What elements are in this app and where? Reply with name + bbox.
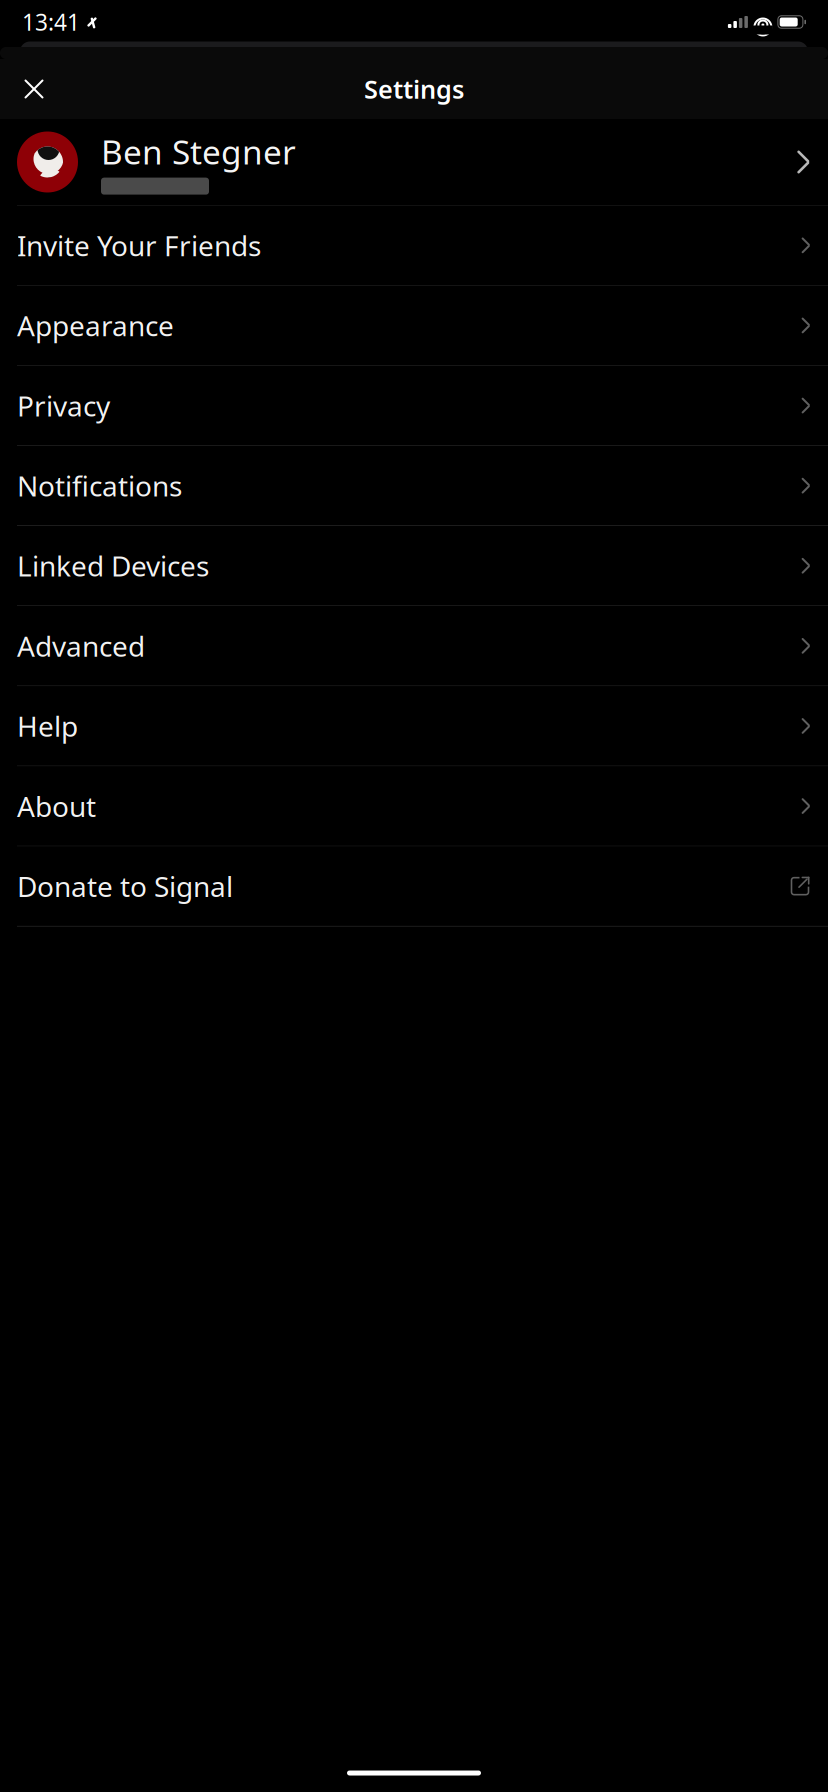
button[interactable]: Notifications [0,446,828,525]
staticText: Help [17,707,78,745]
staticText: Invite Your Friends [17,227,261,264]
button[interactable]: Close [10,65,58,113]
staticText: Linked Devices [17,547,209,584]
staticText: Privacy [17,387,110,424]
staticText: Ben Stegner [101,129,296,174]
button[interactable]: Ben Stegner [0,119,828,205]
button[interactable]: Appearance [0,286,828,365]
staticText: Settings [364,72,464,106]
staticText: 13:41 [22,7,80,37]
button[interactable]: About [0,766,828,846]
button[interactable]: Donate to Signal [0,846,828,926]
button[interactable]: Privacy [0,366,828,445]
button[interactable]: Invite Your Friends [0,206,828,285]
staticText: Advanced [17,627,145,664]
button[interactable]: Help [0,686,828,766]
staticText: About [17,787,96,825]
staticText: Donate to Signal [17,868,233,905]
staticText: Notifications [17,467,182,504]
button[interactable]: Advanced [0,606,828,686]
button[interactable]: Linked Devices [0,526,828,605]
staticText: Appearance [17,307,174,344]
